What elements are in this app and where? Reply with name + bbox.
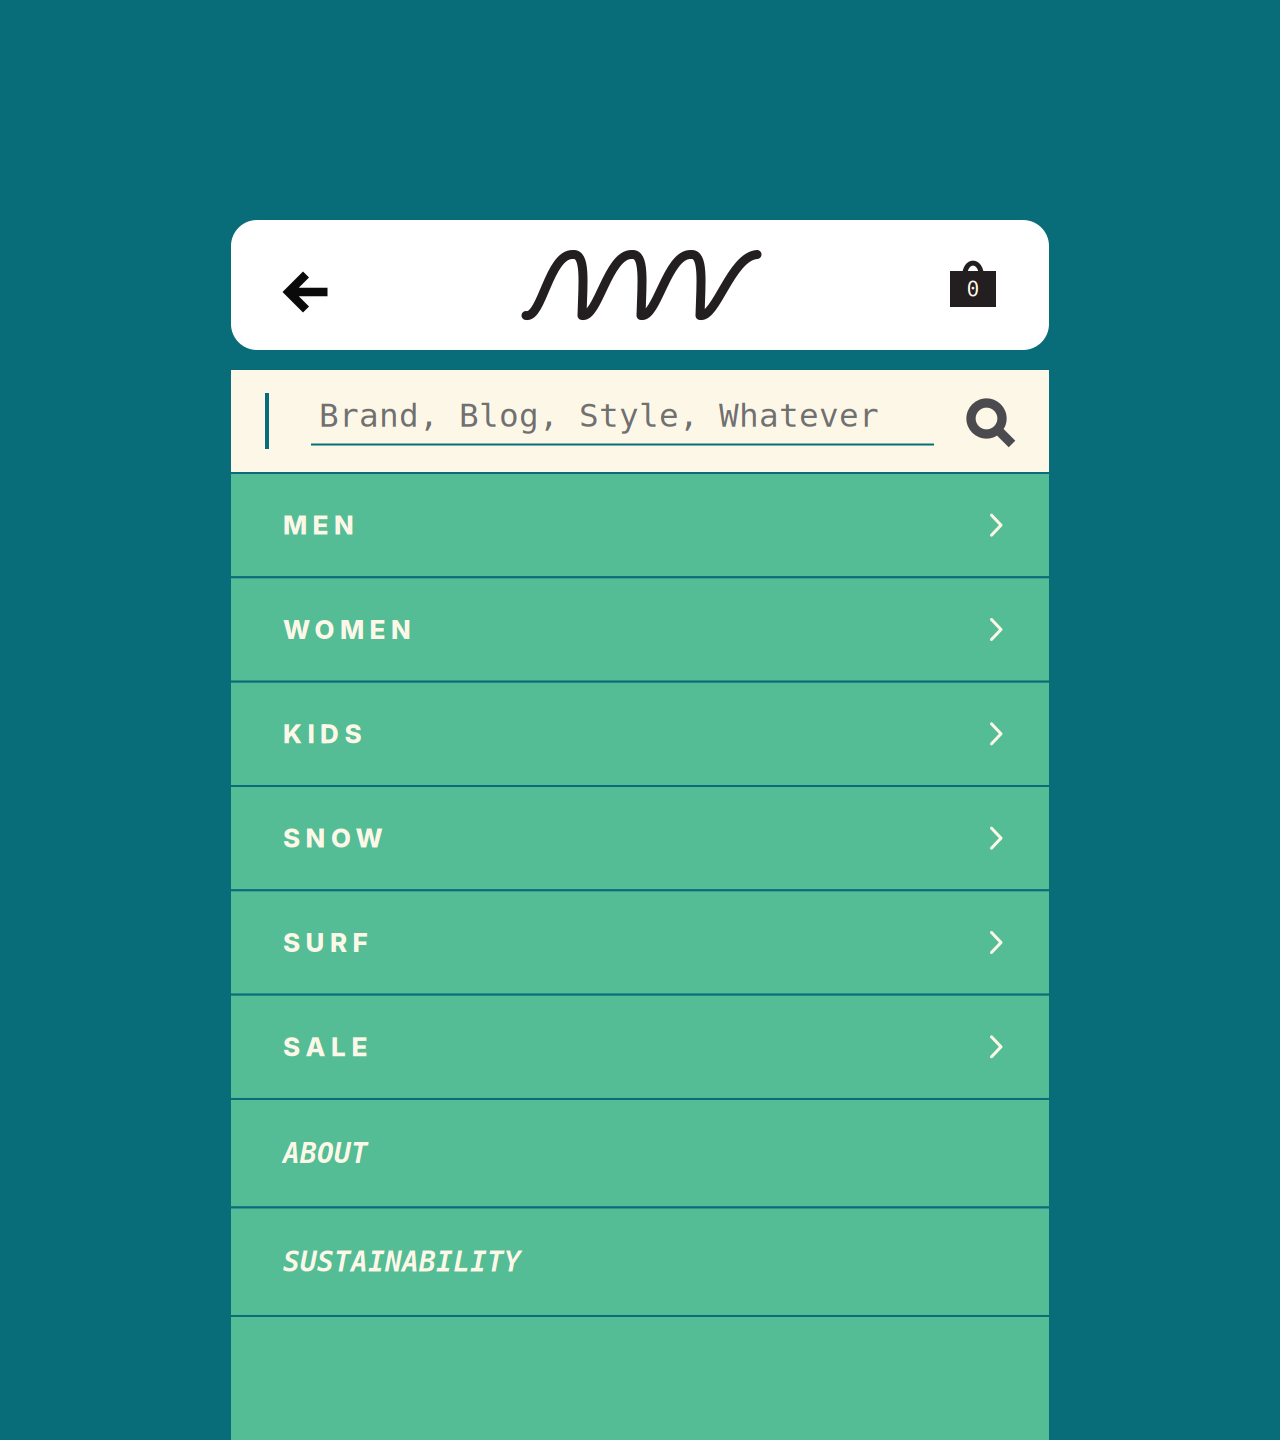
staticText: 0 [966,277,979,301]
button[interactable]: Shopping bag, 0 items [921,220,1031,350]
button[interactable]: SUSTAINABILITY [231,1208,1049,1315]
button[interactable]: MEN [231,474,1049,576]
staticText: MEN [283,509,354,541]
button[interactable]: SNOW [231,787,1049,889]
staticText: SUSTAINABILITY [283,1245,521,1278]
staticText: SNOW [283,822,382,854]
button[interactable]: KIDS [231,683,1049,785]
button[interactable]: ABOUT [231,1100,1049,1206]
staticText: SALE [283,1031,367,1063]
button[interactable]: SURF [231,891,1049,994]
button[interactable]: WOMEN [231,578,1049,681]
staticText: WOMEN [283,614,411,645]
button[interactable]: Brand, Blog, Style, Whatever [231,370,1049,472]
staticText: Brand, Blog, Style, Whatever [319,396,879,434]
staticText: SURF [283,927,367,958]
button[interactable]: SALE [231,996,1049,1098]
staticText: KIDS [283,718,361,750]
staticText: ABOUT [283,1137,368,1169]
button[interactable]: Back [249,220,359,350]
